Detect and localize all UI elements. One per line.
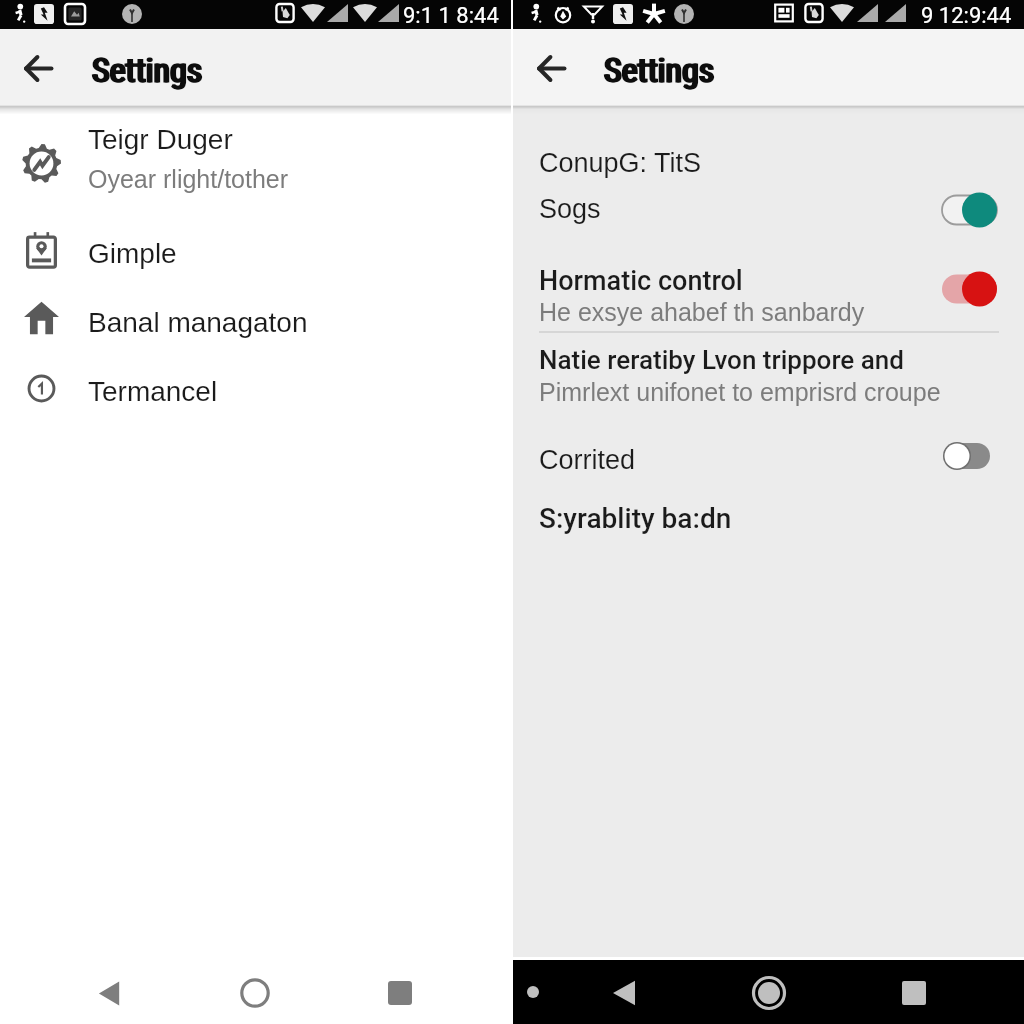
button[interactable]: Back <box>587 965 661 1021</box>
staticText: Pimrlext unifonet to emprisrd croupe <box>539 378 941 406</box>
button[interactable]: Home <box>219 965 291 1021</box>
button[interactable]: Back <box>16 46 60 90</box>
staticText: Teigr Duger <box>88 124 233 155</box>
staticText: Settings <box>93 50 204 90</box>
button[interactable]: Sogs <box>513 183 1024 235</box>
staticText: Hormatic control <box>539 265 743 297</box>
button[interactable]: Teigr Duger <box>0 121 511 207</box>
staticText: Settings <box>603 50 714 90</box>
button[interactable]: Back <box>73 965 145 1021</box>
button[interactable]: Hormatic control <box>513 255 1024 325</box>
staticText: Gimple <box>88 238 177 269</box>
staticText: 9 12:9:44 <box>921 3 1012 29</box>
button[interactable]: Termancel <box>0 363 511 432</box>
staticText: 9:1 1 8:44 <box>403 3 499 29</box>
button[interactable]: Gimple <box>0 225 511 294</box>
button[interactable]: Banal managaton <box>0 294 511 363</box>
staticText: Settings <box>605 50 716 90</box>
staticText: Settings <box>604 50 715 90</box>
button[interactable]: Recents <box>364 965 436 1021</box>
staticText: Termancel <box>88 376 218 407</box>
staticText: He exsye ahabef th sanbardy <box>539 298 865 326</box>
staticText: Corrited <box>539 445 636 475</box>
button[interactable]: Back <box>529 46 573 90</box>
staticText: Sogs <box>539 194 601 224</box>
staticText: Banal managaton <box>88 307 308 338</box>
staticText: Natie reratiby Lvon trippore and <box>539 345 904 375</box>
button[interactable]: Corrited <box>513 434 1024 486</box>
button[interactable]: Recents <box>877 965 951 1021</box>
staticText: Oyear rlight/tother <box>88 165 289 193</box>
staticText: ConupG: TitS <box>539 148 702 178</box>
staticText: Settings <box>91 50 202 90</box>
staticText: S:yrablity ba:dn <box>539 502 732 535</box>
button[interactable]: Home <box>732 963 806 1023</box>
staticText: Settings <box>92 50 203 90</box>
